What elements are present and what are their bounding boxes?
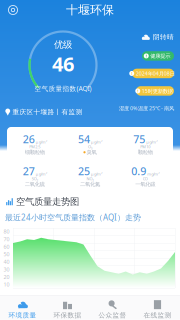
staticText: 在线监测 [143,311,171,319]
staticText: 40 [3,258,9,265]
staticText: 臭氧 [87,149,97,156]
staticText: 20 [3,273,9,280]
staticText: 二氧化氮 [80,181,100,188]
staticText: 50 [3,251,9,258]
staticText: μg/m³ [36,171,47,177]
staticText: SO₂ [32,176,38,181]
staticText: 80 [3,228,9,235]
staticText: 阴转晴 [153,33,174,41]
staticText: NO₂ [86,176,93,181]
button[interactable]: 环境质量 [0,294,45,320]
staticText: 75 [133,132,145,146]
staticText: μg/m³ [91,171,102,177]
staticText: 重庆区十堰路丨有监测 [12,108,82,116]
staticText: O₃ [88,144,92,149]
staticText: mg/m³ [147,171,159,177]
staticText: 0.9 [131,164,146,178]
staticText: 空气质量走势图 [16,196,79,207]
staticText: PM2.5 [29,144,40,149]
staticText: μg/m³ [146,139,157,145]
staticText: μg/m³ [36,139,47,145]
button[interactable]: 公众监督 [90,294,135,320]
staticText: 环保数据 [53,311,81,319]
staticText: 30 [3,266,9,273]
staticText: PM10 [140,144,150,149]
staticText: 细颗粒物 [25,149,45,156]
button[interactable]: 环保数据 [45,294,90,320]
button[interactable]: 15时更新数据 [136,86,174,96]
button[interactable]: 2024年04月08日 [132,69,174,78]
staticText: 环境质量 [8,311,36,319]
staticText: 60 [3,243,9,250]
staticText: 最近24小时空气质量指数（AQI）走势 [5,212,141,223]
staticText: 健康提示 [150,53,170,59]
button[interactable]: Menu [4,2,22,18]
staticText: 一氧化碳 [135,181,155,188]
staticText: 10 [3,281,9,288]
staticText: 70 [3,236,9,243]
staticText: 湿度 0% 温度 25℃ - 南风 [119,105,174,112]
staticText: 26 [23,132,35,146]
button[interactable]: 在线监测 [135,294,180,320]
button[interactable]: 健康提示 [142,51,174,61]
staticText: 54 [78,132,90,146]
staticText: 空气质量指数(AQI) [34,84,91,93]
staticText: 颗粒物 [138,149,153,156]
staticText: 公众监督 [98,311,126,319]
staticText: CO [143,176,148,181]
staticText: 46 [52,50,74,77]
staticText: 27 [23,164,35,178]
staticText: 优级 [54,39,72,50]
staticText: 十堰环保 [66,3,114,17]
staticText: μg/m³ [91,139,102,145]
staticText: 15时更新数据 [142,87,173,94]
staticText: 二氧化硫 [25,181,45,188]
staticText: 25 [78,164,90,178]
staticText: 2024年04月08日 [136,70,175,77]
